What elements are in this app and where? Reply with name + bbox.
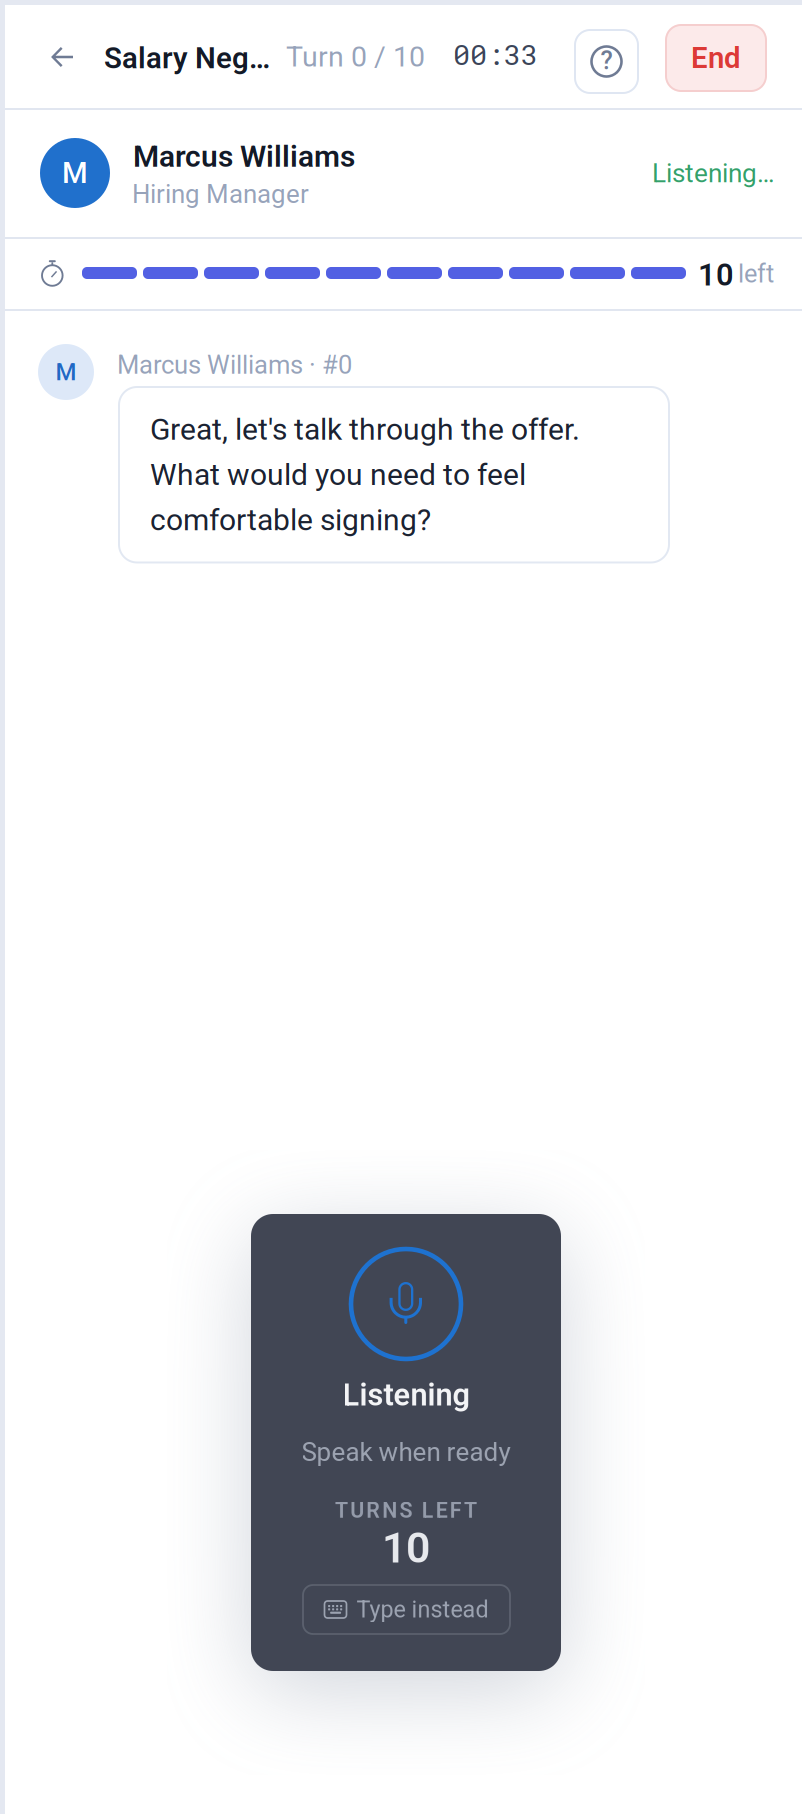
staticText: Listening — [342, 1377, 469, 1413]
staticText: Type instead — [356, 1596, 488, 1623]
staticText: left — [738, 259, 774, 289]
staticText: 00:33 — [453, 35, 538, 73]
button[interactable]: Help — [575, 30, 638, 93]
staticText: M — [62, 156, 88, 190]
button[interactable]: End — [666, 25, 766, 91]
staticText: Great, let's talk through the offer. Wha… — [150, 412, 580, 537]
staticText: Salary Neg… — [104, 41, 270, 75]
staticText: Listening… — [652, 158, 774, 189]
staticText: Speak when ready — [301, 1437, 510, 1467]
staticText: 10 — [382, 1523, 430, 1573]
button[interactable]: Back — [33, 28, 91, 86]
staticText: End — [691, 41, 741, 75]
staticText: ? — [600, 46, 612, 75]
staticText: Hiring Manager — [132, 179, 309, 209]
button[interactable]: Type instead — [303, 1585, 510, 1634]
staticText: Turn 0 / 10 — [286, 40, 425, 73]
staticText: Marcus Williams · #0 — [117, 350, 352, 380]
staticText: 10 — [698, 257, 734, 293]
staticText: TURNS LEFT — [335, 1498, 477, 1523]
staticText: M — [55, 358, 76, 386]
staticText: Marcus Williams — [133, 139, 355, 174]
